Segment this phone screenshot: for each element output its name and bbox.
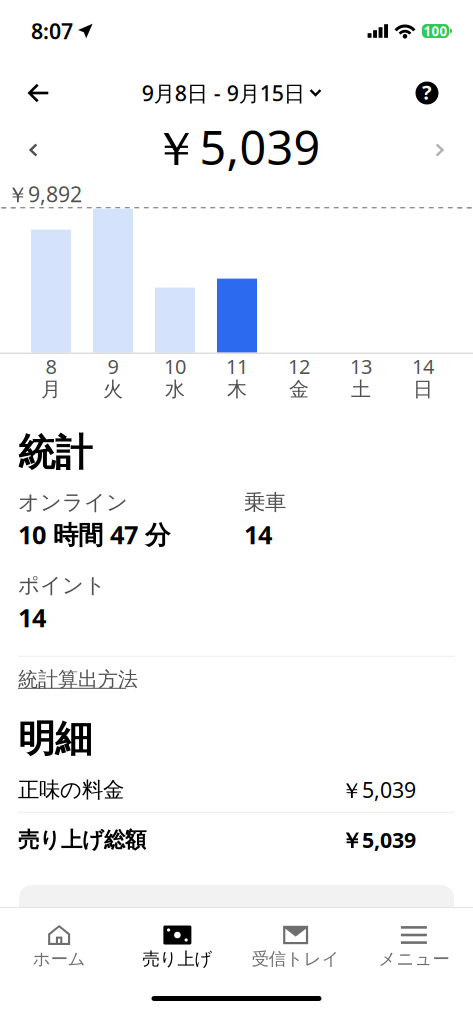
button[interactable]: メニュー — [355, 908, 473, 988]
button[interactable]: Back — [16, 73, 60, 113]
staticText: カードで獲得した収入 — [129, 913, 344, 939]
staticText: 11 — [226, 353, 248, 380]
staticText: 100 — [423, 22, 447, 40]
button[interactable]: 受信トレイ — [236, 908, 355, 988]
staticText: 10 時間 47 分 — [18, 517, 170, 551]
staticText: ポイント — [18, 572, 106, 598]
staticText: ￥5,039 — [341, 776, 416, 804]
staticText: 14 — [18, 600, 46, 634]
staticText: メニュー — [378, 948, 449, 970]
staticText: 統計算出方法 — [18, 667, 138, 692]
staticText: 8:07 — [31, 17, 73, 45]
button[interactable]: Next week — [420, 127, 460, 167]
staticText: 8 — [45, 353, 56, 380]
staticText: ￥9,892 — [7, 180, 82, 208]
staticText: 乗車 — [244, 489, 286, 515]
staticText: 月 — [41, 377, 61, 402]
staticText: 木 — [227, 377, 247, 402]
staticText: 日 — [413, 377, 433, 402]
staticText: ? — [422, 79, 432, 105]
staticText: ホーム — [33, 948, 86, 970]
staticText: 受信トレイ — [252, 948, 340, 970]
staticText: オンライン — [18, 489, 128, 515]
button[interactable]: Help — [405, 73, 449, 113]
staticText: 金 — [289, 377, 309, 402]
staticText: 売り上げ総額 — [18, 827, 146, 853]
button[interactable]: 売り上げ — [118, 908, 236, 988]
staticText: 統計 — [18, 430, 92, 476]
staticText: 正味の料金 — [18, 777, 124, 803]
staticText: 13 — [350, 353, 372, 380]
staticText: 14 — [244, 517, 272, 551]
staticText: 水 — [165, 377, 185, 402]
button[interactable]: ホーム — [0, 908, 118, 988]
button[interactable]: 統計算出方法 — [18, 657, 138, 693]
staticText: 14 — [412, 353, 434, 380]
staticText: 土 — [351, 377, 371, 402]
button[interactable]: Previous week — [13, 127, 53, 167]
staticText: 12 — [288, 353, 310, 380]
staticText: 9 — [107, 353, 118, 380]
staticText: 明細 — [18, 716, 92, 762]
staticText: ￥5,039 — [152, 116, 320, 178]
staticText: 10 — [164, 353, 186, 380]
staticText: 売り上げ — [142, 948, 212, 970]
staticText: ￥5,039 — [341, 826, 416, 854]
button[interactable]: 9月8日 - 9月15日 — [140, 72, 333, 114]
staticText: 火 — [103, 377, 123, 402]
staticText: 9月8日 - 9月15日 — [142, 79, 305, 107]
